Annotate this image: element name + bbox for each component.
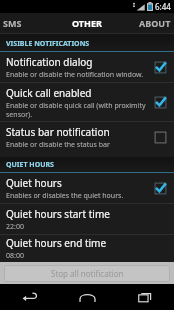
- staticText: Enable or disable the status bar notific…: [6, 140, 147, 150]
- button[interactable]: Status bar notification: [0, 122, 174, 152]
- button[interactable]: Home: [58, 284, 116, 310]
- staticText: Stop all notification: [51, 268, 124, 279]
- button[interactable]: OTHER: [58, 13, 116, 33]
- staticText: Enables or disables the quiet hours.: [6, 191, 124, 201]
- button[interactable]: Notification dialog: [0, 52, 174, 82]
- staticText: OTHER: [72, 17, 102, 29]
- staticText: Status bar notification: [6, 125, 110, 139]
- staticText: ABOUT: [139, 17, 171, 29]
- staticText: VISIBLE NOTIFICATIONS: [6, 39, 90, 49]
- other: Unchecked: [153, 130, 168, 145]
- button[interactable]: Quiet hours end time: [0, 235, 174, 262]
- staticText: SMS: [3, 17, 22, 29]
- staticText: 08:00: [6, 251, 24, 261]
- button[interactable]: Recent apps: [116, 284, 174, 310]
- staticText: Notification dialog: [6, 55, 93, 69]
- staticText: Quiet hours start time: [6, 207, 110, 221]
- other: Checked: [153, 181, 168, 196]
- staticText: Quick call enabled: [6, 86, 92, 100]
- button[interactable]: Quiet hours start time: [0, 204, 174, 234]
- staticText: Quiet hours end time: [6, 236, 107, 250]
- other: Checked: [153, 95, 168, 110]
- button[interactable]: Stop all notification: [4, 265, 170, 282]
- button[interactable]: Back: [0, 284, 58, 310]
- staticText: 6:44: [155, 1, 171, 12]
- other: Checked: [153, 60, 168, 75]
- staticText: 22:00: [6, 222, 24, 232]
- button[interactable]: SMS: [0, 13, 58, 33]
- button[interactable]: ABOUT: [116, 13, 174, 33]
- staticText: Quiet hours: [6, 176, 62, 190]
- staticText: Enable or disable the notification windo…: [6, 70, 144, 80]
- button[interactable]: Quiet hours: [0, 173, 174, 203]
- staticText: QUIET HOURS: [6, 160, 54, 170]
- button[interactable]: Quick call enabled: [0, 83, 174, 121]
- staticText: Enable or disable quick call (with proxi…: [6, 101, 147, 119]
